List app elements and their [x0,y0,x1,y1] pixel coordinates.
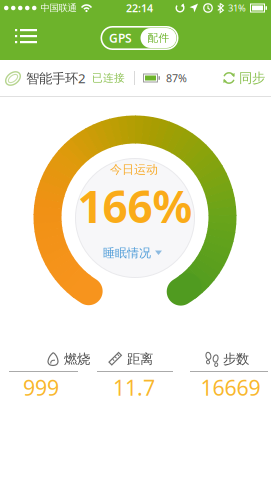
staticText: 中国联通 [40,2,76,14]
button[interactable]: Menu [0,28,37,48]
staticText: 22:14 [126,1,153,15]
staticText: 166% [77,177,192,235]
staticText: 配件 [147,31,169,44]
staticText: 同步 [239,70,265,86]
staticText: 31% [228,2,246,14]
button[interactable]: 配件 [140,28,176,48]
staticText: 16669 [200,373,260,402]
staticText: 智能手环2 [26,69,86,87]
staticText: GPS [109,30,132,46]
staticText: 999 [23,373,59,402]
staticText: 步数 [223,351,249,367]
staticText: 今日运动 [110,162,158,177]
button[interactable]: 同步 [222,70,271,86]
button[interactable]: 睡眠情况 [103,246,162,260]
staticText: 11.7 [113,373,155,402]
staticText: 87% [166,71,187,85]
staticText: 已连接 [92,71,125,84]
staticText: 睡眠情况 [103,246,151,260]
staticText: 燃烧 [64,351,90,367]
staticText: 距离 [127,351,153,367]
button[interactable]: GPS [100,26,140,50]
